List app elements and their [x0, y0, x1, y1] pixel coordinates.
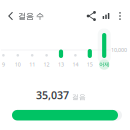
staticText: 11: [29, 61, 35, 68]
staticText: 10,000: [111, 46, 127, 54]
staticText: 걸음: [72, 93, 86, 101]
staticText: 12: [44, 61, 50, 68]
staticText: 어제: [99, 61, 109, 68]
button[interactable]: Charts: [100, 9, 112, 23]
button[interactable]: More options: [115, 9, 125, 23]
staticText: 9: [2, 61, 5, 68]
staticText: 35,037: [36, 88, 69, 102]
button[interactable]: Back: [3, 7, 17, 25]
staticText: 10: [15, 61, 21, 68]
staticText: 걸음 수: [18, 11, 44, 21]
staticText: 15: [87, 61, 93, 68]
button[interactable]: Share: [85, 9, 97, 23]
staticText: 13: [58, 61, 64, 68]
staticText: 14: [72, 61, 78, 68]
